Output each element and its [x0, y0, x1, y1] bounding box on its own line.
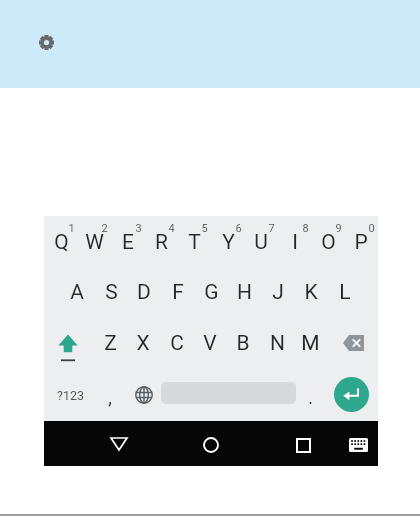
staticText: .: [308, 387, 313, 408]
button[interactable]: K: [294, 267, 328, 317]
button[interactable]: G: [194, 267, 228, 317]
button[interactable]: Q: [44, 217, 78, 267]
button[interactable]: E: [111, 217, 145, 267]
button[interactable]: [127, 370, 161, 420]
staticText: J: [272, 280, 284, 305]
button[interactable]: W: [77, 217, 111, 267]
staticText: B: [236, 331, 250, 356]
button[interactable]: P: [344, 217, 378, 267]
button[interactable]: A: [60, 267, 94, 317]
button[interactable]: B: [226, 318, 260, 368]
staticText: 1: [68, 222, 75, 235]
staticText: G: [204, 280, 219, 305]
staticText: D: [137, 280, 151, 305]
staticText: V: [203, 331, 217, 356]
button[interactable]: [99, 424, 139, 464]
staticText: I: [292, 230, 298, 255]
staticText: W: [85, 230, 104, 255]
button[interactable]: ,: [93, 372, 127, 422]
staticText: L: [339, 280, 351, 305]
button[interactable]: .: [293, 372, 327, 422]
staticText: 9: [335, 222, 342, 235]
staticText: 7: [268, 222, 275, 235]
button[interactable]: N: [260, 318, 294, 368]
staticText: Y: [222, 230, 235, 255]
staticText: 4: [168, 222, 175, 235]
staticText: X: [136, 331, 150, 356]
button[interactable]: V: [193, 318, 227, 368]
staticText: ,: [108, 387, 112, 408]
staticText: C: [170, 331, 184, 356]
staticText: 5: [201, 222, 208, 235]
button[interactable]: Y: [211, 217, 245, 267]
staticText: O: [321, 230, 336, 255]
staticText: 2: [101, 222, 108, 235]
staticText: P: [354, 230, 368, 255]
button[interactable]: [191, 425, 231, 465]
staticText: Q: [54, 230, 69, 255]
staticText: M: [301, 331, 320, 356]
staticText: F: [172, 280, 184, 305]
staticText: S: [105, 280, 118, 305]
button[interactable]: J: [261, 267, 295, 317]
staticText: N: [270, 331, 285, 356]
button[interactable]: T: [177, 217, 211, 267]
button[interactable]: M: [293, 318, 327, 368]
button[interactable]: ?123: [53, 370, 87, 420]
button[interactable]: L: [328, 267, 362, 317]
button[interactable]: U: [244, 217, 278, 267]
staticText: 8: [302, 222, 309, 235]
button[interactable]: [334, 377, 369, 412]
button[interactable]: [342, 429, 374, 461]
staticText: 6: [235, 222, 242, 235]
staticText: H: [237, 280, 252, 305]
staticText: Z: [104, 331, 117, 356]
staticText: K: [304, 280, 318, 305]
staticText: 0: [368, 222, 375, 235]
button[interactable]: F: [161, 267, 195, 317]
staticText: R: [155, 230, 168, 255]
staticText: ?123: [57, 388, 84, 403]
button[interactable]: Z: [93, 318, 127, 368]
button[interactable]: [48, 318, 88, 368]
staticText: A: [70, 280, 84, 305]
button[interactable]: [283, 425, 323, 465]
button[interactable]: H: [227, 267, 261, 317]
staticText: U: [254, 230, 268, 255]
button[interactable]: R: [144, 217, 178, 267]
button[interactable]: D: [127, 267, 161, 317]
button[interactable]: O: [311, 217, 345, 267]
button[interactable]: [36, 32, 57, 53]
staticText: 3: [135, 222, 142, 235]
button[interactable]: X: [126, 318, 160, 368]
button[interactable]: I: [278, 217, 312, 267]
staticText: T: [188, 230, 201, 255]
button[interactable]: C: [160, 318, 194, 368]
staticText: E: [122, 230, 134, 255]
button[interactable]: [331, 318, 375, 368]
button[interactable]: S: [94, 267, 128, 317]
